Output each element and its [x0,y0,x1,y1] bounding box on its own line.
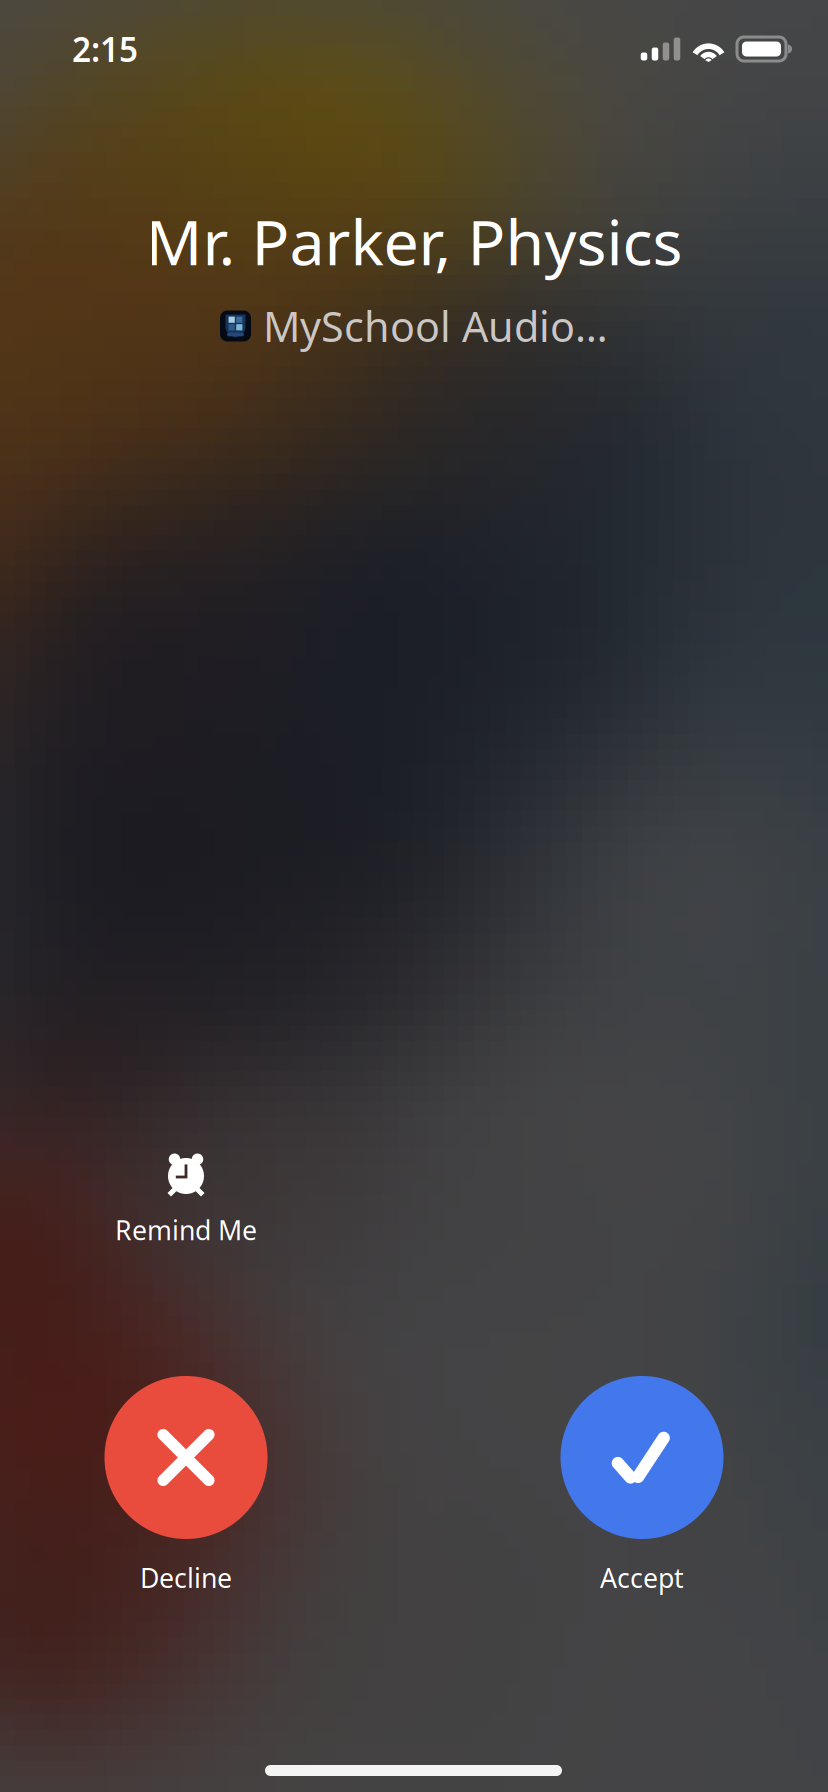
staticText: Decline [140,1560,232,1595]
button[interactable]: Remind Me [76,1146,296,1245]
staticText: Mr. Parker, Physics [145,199,682,283]
staticText: Accept [600,1560,684,1595]
button[interactable]: Decline [86,1376,286,1595]
staticText: 2:15 [72,27,138,71]
button[interactable]: Accept [542,1376,742,1595]
staticText: MySchool Audio… [263,299,608,353]
staticText: Remind Me [115,1212,257,1248]
